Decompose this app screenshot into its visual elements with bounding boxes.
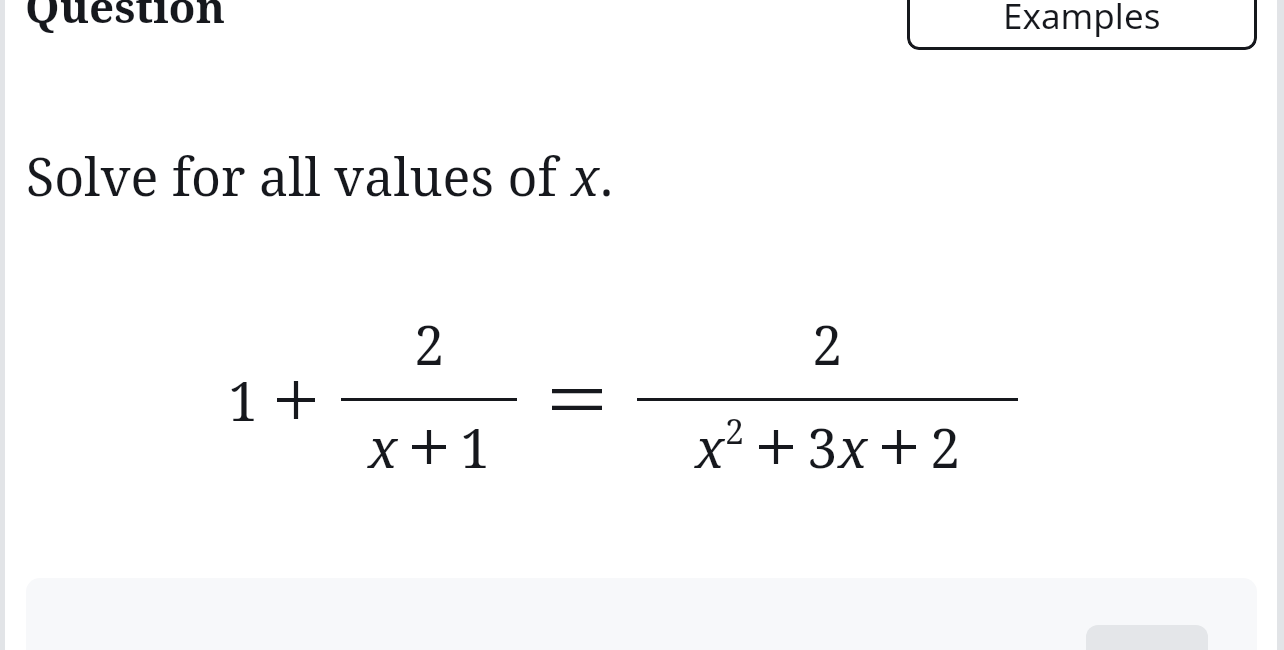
staticText: Question [25,0,225,36]
staticText: 1 [228,363,259,437]
staticText: x [695,410,725,484]
staticText: 3 [807,410,838,484]
staticText: 2 [930,410,961,484]
staticText: x [571,140,600,211]
staticText: . [600,140,614,211]
button[interactable]: Examples [907,0,1257,50]
staticText: 2 [725,408,745,454]
staticText: 2 [812,307,843,381]
staticText: 2 [414,307,445,381]
staticText: x [368,410,398,484]
staticText: Examples [1003,0,1161,40]
staticText: 1 [460,410,491,484]
staticText: x [838,410,868,484]
staticText: Solve for all values of [26,140,571,211]
